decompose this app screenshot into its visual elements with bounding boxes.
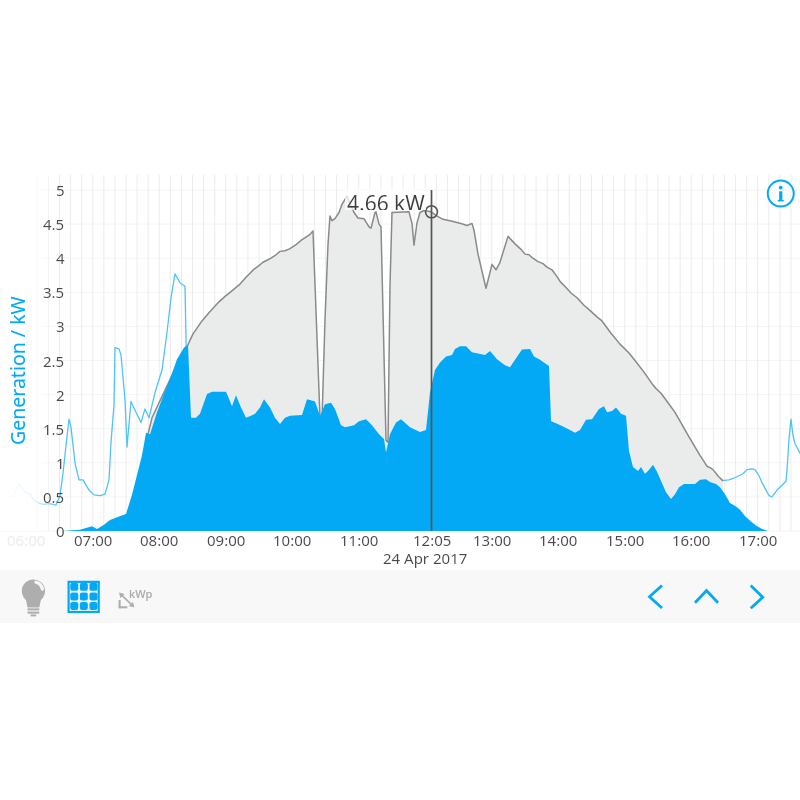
staticText: 0 (56, 521, 65, 541)
staticText: 13:00 (473, 530, 512, 550)
staticText: 3 (56, 316, 65, 336)
staticText: 2.5 (43, 351, 65, 371)
staticText: 0.5 (43, 487, 65, 507)
button[interactable]: Previous (637, 576, 677, 616)
staticText: 09:00 (207, 530, 246, 550)
staticText: 24 Apr 2017 (383, 548, 468, 568)
staticText: 2 (56, 385, 65, 405)
staticText: 1.5 (43, 419, 65, 439)
button[interactable]: Info (764, 177, 798, 211)
staticText: kWp (129, 586, 153, 601)
staticText: Generation / kW (4, 296, 31, 445)
staticText: 08:00 (140, 530, 179, 550)
staticText: 16:00 (672, 530, 711, 550)
staticText: 07:00 (74, 530, 113, 550)
button[interactable]: Generation (62, 576, 105, 619)
staticText: 15:00 (606, 530, 645, 550)
staticText: 1 (56, 453, 65, 473)
staticText: 10:00 (273, 530, 312, 550)
button[interactable]: Consumption (13, 575, 55, 617)
staticText: 06:00 (7, 530, 46, 550)
staticText: 4.66 kW (347, 189, 425, 210)
button[interactable]: Next (737, 576, 777, 616)
staticText: 17:00 (739, 530, 778, 550)
staticText: 4 (56, 248, 65, 268)
staticText: 4.5 (43, 214, 65, 234)
button[interactable]: Normalise kWp (114, 575, 170, 628)
staticText: 3.5 (43, 282, 65, 302)
staticText: 12:05 (413, 530, 452, 550)
button[interactable]: Up (687, 576, 727, 616)
staticText: 11:00 (340, 530, 379, 550)
staticText: 5 (56, 180, 65, 200)
staticText: 14:00 (539, 530, 578, 550)
